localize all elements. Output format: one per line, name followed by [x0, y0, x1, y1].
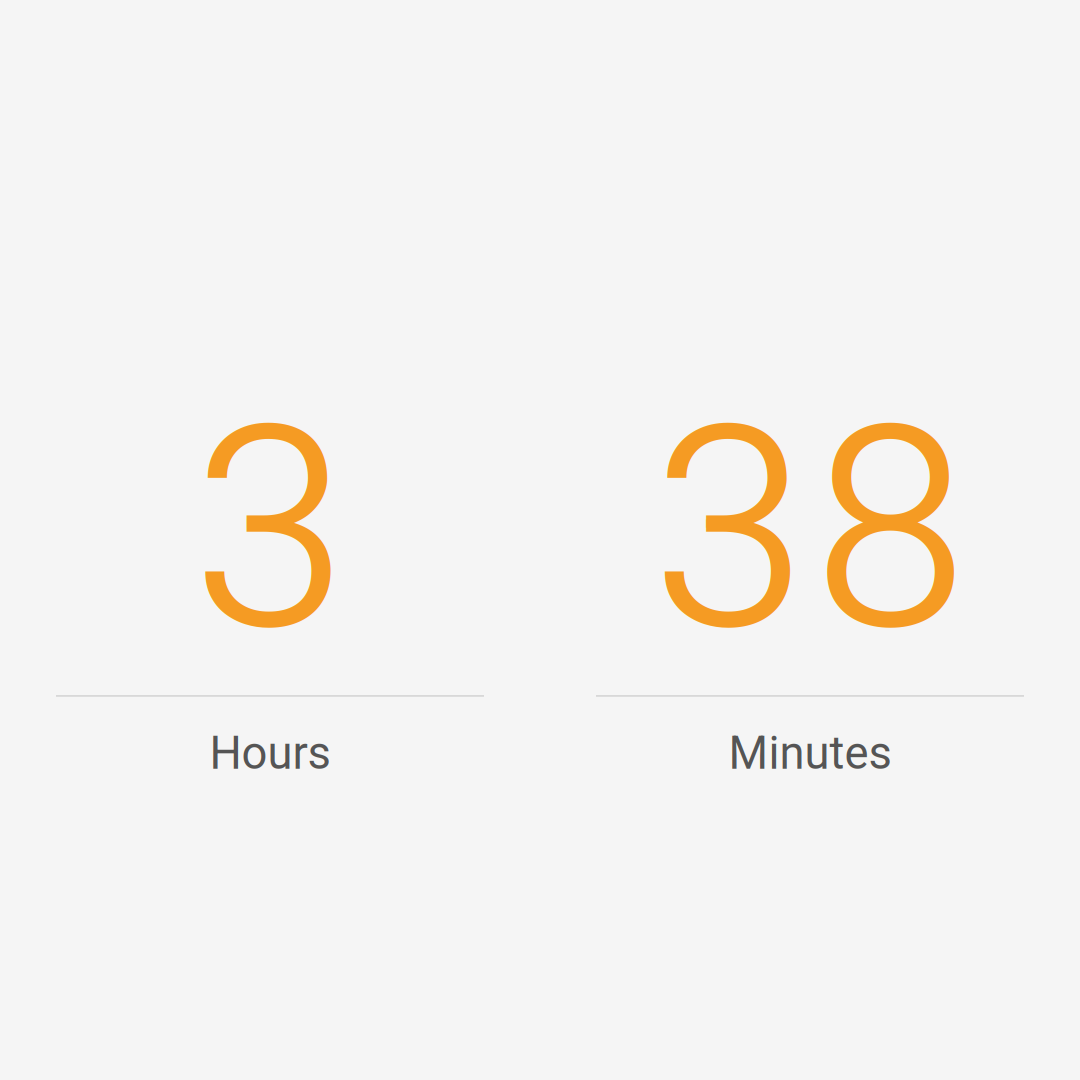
button[interactable]: 38: [596, 365, 1024, 780]
staticText: 3: [192, 365, 348, 693]
staticText: 38: [651, 365, 968, 693]
staticText: Minutes: [728, 727, 891, 780]
button[interactable]: 3: [56, 365, 484, 780]
staticText: Hours: [209, 727, 330, 780]
